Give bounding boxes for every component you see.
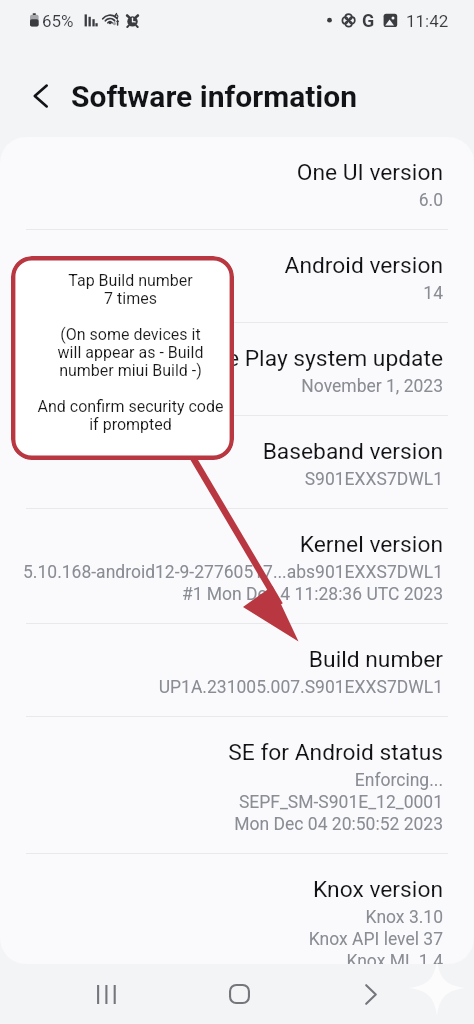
staticText: Android version (18, 254, 443, 278)
button[interactable]: Back (343, 964, 399, 1024)
staticText: Build number (18, 648, 443, 672)
staticText: 6.0 (18, 188, 443, 210)
button[interactable]: Kernel version (0, 509, 474, 624)
button[interactable]: Android version (0, 230, 474, 323)
staticText: SE for Android status (18, 741, 443, 765)
staticText: Tap Build number 7 times (On some device… (19, 272, 234, 434)
staticText: Kernel version (18, 533, 443, 557)
staticText: Baseband version (18, 440, 443, 464)
staticText: 5.10.168-android12-9-27760517...abs901EX… (18, 560, 443, 604)
staticText: Google Play system update (18, 347, 443, 371)
staticText: UP1A.231005.007.S901EXXS7DWL1 (18, 675, 443, 697)
staticText: November 1, 2023 (18, 374, 443, 396)
staticText: 14 (18, 281, 443, 303)
staticText: Knox 3.10 Knox API level 37 Knox ML 1.4 (18, 905, 443, 964)
button[interactable]: One UI version (0, 137, 474, 230)
button[interactable]: Back (21, 76, 61, 116)
button[interactable]: Google Play system update (0, 323, 474, 416)
button[interactable]: Build number (0, 624, 474, 717)
staticText: Knox version (18, 878, 443, 902)
staticText: Enforcing... SEPF_SM-S901E_12_0001 Mon D… (18, 768, 443, 834)
staticText: Software information (71, 79, 358, 114)
staticText: S901EXXS7DWL1 (18, 467, 443, 489)
staticText: 11:42 (406, 11, 449, 31)
button[interactable]: Baseband version (0, 416, 474, 509)
button[interactable]: Knox version (0, 854, 474, 964)
staticText: One UI version (18, 161, 443, 185)
button[interactable]: Recent apps (78, 964, 134, 1024)
button[interactable]: SE for Android status (0, 717, 474, 854)
staticText: G (362, 10, 375, 31)
button[interactable]: Home (211, 964, 267, 1024)
staticText: 65% (42, 11, 74, 31)
